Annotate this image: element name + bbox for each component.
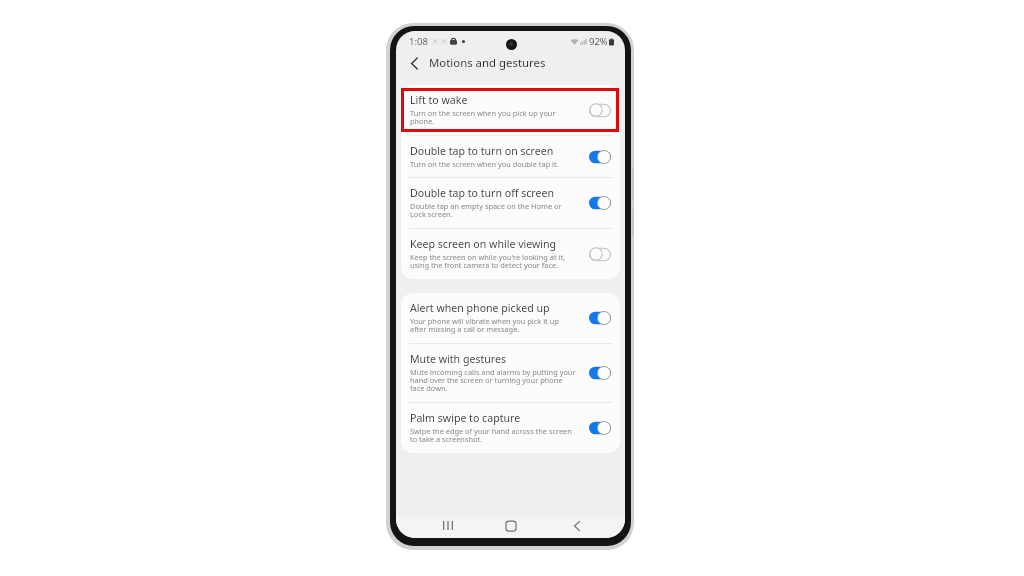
staticText: Double tap to turn off screen	[410, 186, 555, 200]
staticText: Mute with gestures	[410, 352, 507, 366]
button[interactable]: Turn off	[589, 150, 611, 164]
staticText: Alert when phone picked up	[410, 301, 550, 315]
staticText: Your phone will vibrate when you pick it…	[410, 316, 559, 335]
button[interactable]: Alert when phone picked up	[401, 293, 620, 343]
staticText: Mute incoming calls and alarms by puttin…	[410, 367, 576, 394]
button[interactable]: Recent apps	[436, 513, 460, 538]
staticText: 92%	[589, 35, 608, 48]
staticText: Keep the screen on while you're looking …	[410, 252, 566, 271]
staticText: Swipe the edge of your hand across the s…	[410, 426, 572, 445]
button[interactable]: Palm swipe to capture	[401, 403, 620, 453]
staticText: Palm swipe to capture	[410, 411, 521, 425]
button[interactable]: Keep screen on while viewing	[401, 229, 620, 279]
button[interactable]: Mute with gestures	[401, 344, 620, 402]
button[interactable]: Navigate up	[396, 48, 429, 78]
button[interactable]: Double tap to turn off screen	[401, 178, 620, 228]
button[interactable]: Turn on	[589, 103, 611, 117]
staticText: Keep screen on while viewing	[410, 237, 557, 251]
button[interactable]: Turn off	[589, 366, 611, 380]
button[interactable]: Turn off	[589, 196, 611, 210]
staticText: Double tap to turn on screen	[410, 144, 554, 158]
staticText: Lift to wake	[410, 93, 468, 107]
staticText: Motions and gestures	[429, 55, 546, 71]
staticText: Double tap an empty space on the Home or…	[410, 201, 562, 220]
staticText: Turn on the screen when you double tap i…	[410, 159, 559, 169]
staticText: Turn on the screen when you pick up your…	[410, 108, 556, 127]
button[interactable]: Back	[565, 513, 589, 538]
button[interactable]: Turn on	[589, 247, 611, 261]
button[interactable]: Turn off	[589, 311, 611, 325]
button[interactable]: Turn off	[589, 421, 611, 435]
staticText: 1:08	[409, 35, 428, 48]
button[interactable]: Double tap to turn on screen	[401, 136, 620, 177]
button[interactable]: Lift to wake	[401, 85, 620, 135]
button[interactable]: Home	[499, 513, 523, 538]
